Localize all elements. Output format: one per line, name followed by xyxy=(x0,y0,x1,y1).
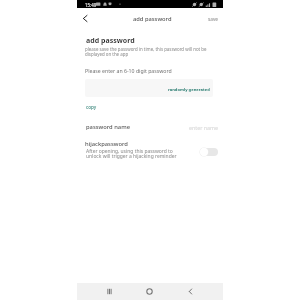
button[interactable]: copy xyxy=(86,104,97,110)
button[interactable]: Back xyxy=(170,283,211,300)
staticText: password name xyxy=(86,123,130,131)
staticText: add password xyxy=(86,35,135,45)
button[interactable]: hijack password switch, off xyxy=(198,146,219,158)
staticText: please save the password in time, this p… xyxy=(85,46,211,57)
staticText: hijackpassword xyxy=(85,140,128,148)
button[interactable]: Recent apps xyxy=(89,283,129,300)
staticText: add password xyxy=(133,15,172,23)
staticText: randomly generated xyxy=(168,87,210,93)
staticText: Please enter an 6-10 digit password xyxy=(85,67,172,74)
staticText: copy xyxy=(86,104,97,110)
button[interactable]: Back xyxy=(79,13,90,24)
button[interactable]: password name xyxy=(77,119,223,135)
button[interactable]: Home xyxy=(129,283,170,300)
staticText: enter name xyxy=(189,124,218,131)
button[interactable]: save xyxy=(208,16,218,22)
button[interactable]: randomly generated xyxy=(168,87,210,93)
staticText: After opening, using this password to un… xyxy=(86,148,180,159)
staticText: 15:49 xyxy=(85,2,97,8)
staticText: save xyxy=(208,16,218,22)
